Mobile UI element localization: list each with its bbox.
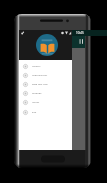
staticText: About: [32, 100, 40, 103]
staticText: Exit: [32, 110, 37, 113]
staticText: Learning List: [32, 73, 48, 76]
button[interactable]: App logo: [36, 34, 58, 56]
staticText: Rate this App: [32, 82, 48, 85]
staticText: Settings: [32, 91, 42, 94]
button[interactable]: Learning List: [19, 71, 72, 80]
button[interactable]: History: [19, 62, 72, 71]
staticText: 10:45: [76, 31, 84, 35]
button[interactable]: About: [19, 98, 72, 107]
button[interactable]: Exit: [19, 108, 72, 117]
button[interactable]: More options: [78, 38, 85, 45]
staticText: History: [32, 64, 41, 67]
button[interactable]: Rate this App: [19, 80, 72, 89]
button[interactable]: Settings: [19, 89, 72, 98]
